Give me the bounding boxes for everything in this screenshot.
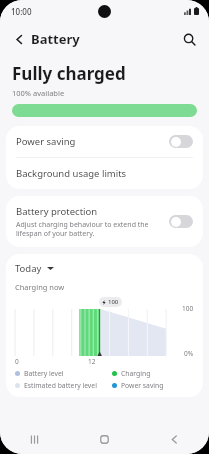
button[interactable]: Power saving bbox=[6, 126, 203, 157]
staticText: Today bbox=[15, 262, 42, 275]
button[interactable]: Search bbox=[176, 26, 202, 52]
staticText: 100 bbox=[182, 304, 194, 313]
staticText: Battery bbox=[31, 30, 80, 48]
staticText: 0 bbox=[15, 357, 19, 366]
staticText: Adjust charging behaviour to extend the … bbox=[16, 220, 149, 238]
button[interactable]: Home bbox=[69, 424, 139, 454]
button[interactable]: Background usage limits bbox=[6, 158, 203, 189]
staticText: Estimated battery level bbox=[24, 381, 97, 390]
button[interactable]: Recents bbox=[0, 424, 69, 454]
button[interactable]: Battery protection bbox=[6, 196, 203, 247]
staticText: 100% available bbox=[12, 88, 65, 98]
staticText: 12 bbox=[88, 357, 96, 366]
button[interactable]: Back bbox=[6, 26, 32, 52]
button[interactable]: Back bbox=[139, 424, 209, 454]
staticText: Charging now bbox=[15, 282, 65, 292]
staticText: Power saving bbox=[121, 381, 164, 390]
button[interactable]: Today bbox=[15, 262, 54, 275]
staticText: 10:00 bbox=[11, 6, 32, 17]
staticText: Power saving bbox=[16, 135, 169, 148]
staticText: Background usage limits bbox=[16, 167, 127, 180]
button[interactable]: Toggle bbox=[169, 135, 193, 148]
staticText: Charging bbox=[121, 369, 151, 378]
staticText: 0% bbox=[184, 349, 194, 358]
staticText: 100 bbox=[108, 298, 119, 306]
staticText: Fully charged bbox=[12, 62, 126, 85]
button[interactable]: Toggle bbox=[169, 215, 193, 228]
staticText: Battery protection bbox=[16, 205, 98, 218]
staticText: Battery level bbox=[24, 369, 64, 378]
